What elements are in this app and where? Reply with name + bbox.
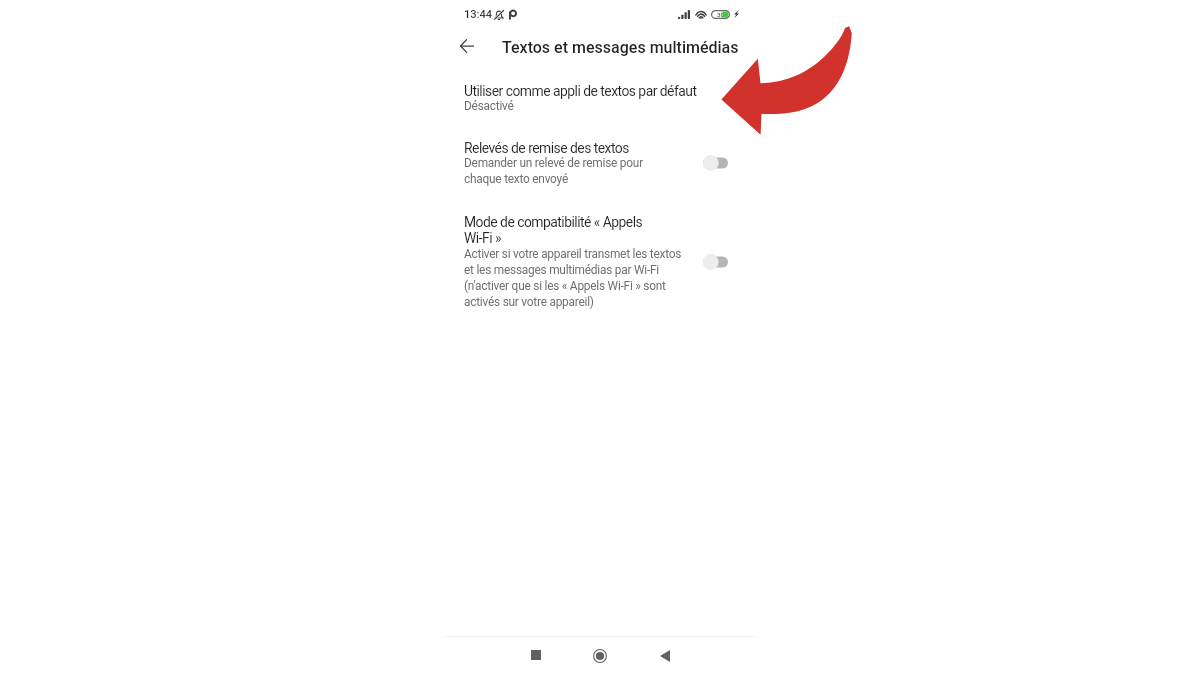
button[interactable]: Home: [583, 639, 617, 673]
staticText: Mode de compatibilité « Appels Wi-Fi »: [464, 214, 659, 247]
staticText: 13:44: [464, 8, 492, 21]
button[interactable]: Relevés de remise des textos: [444, 134, 756, 190]
staticText: Textos et messages multimédias: [502, 38, 739, 57]
button[interactable]: Toggle: [697, 248, 733, 276]
staticText: 30: [717, 11, 725, 18]
staticText: Demander un relevé de remise pour chaque…: [464, 156, 669, 186]
staticText: Relevés de remise des textos: [464, 140, 629, 156]
button[interactable]: Mode de compatibilité « Appels Wi-Fi »: [444, 207, 756, 312]
button[interactable]: Back: [647, 639, 681, 673]
button[interactable]: Toggle: [697, 149, 733, 177]
button[interactable]: Back: [452, 31, 481, 60]
staticText: Désactivé: [464, 99, 514, 113]
button[interactable]: Recents: [519, 639, 553, 673]
staticText: Activer si votre appareil transmet les t…: [464, 247, 683, 309]
staticText: Utiliser comme appli de textos par défau…: [464, 83, 697, 99]
button[interactable]: Utiliser comme appli de textos par défau…: [444, 72, 756, 118]
